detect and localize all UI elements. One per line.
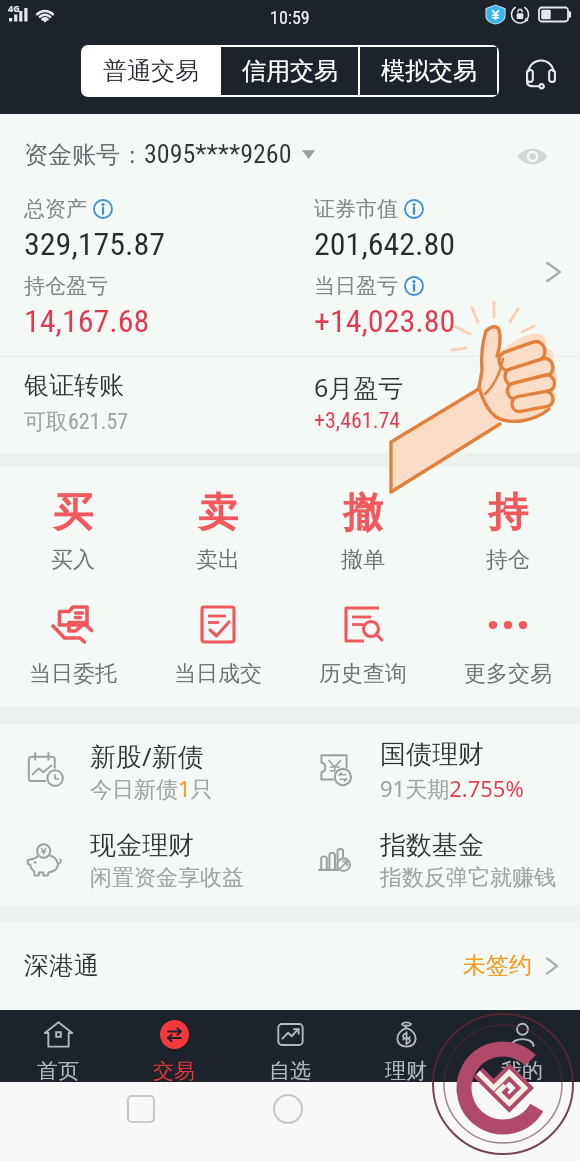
button[interactable]: 理财 [348, 1010, 464, 1082]
staticText: 撤 [343, 487, 383, 537]
button[interactable]: 国债理财 [290, 724, 580, 815]
button[interactable]: 卖 [145, 487, 290, 574]
staticText: +3,461.74 [314, 408, 401, 434]
staticText: 更多交易 [464, 660, 552, 688]
staticText: 银证转账 [24, 370, 124, 401]
staticText: 10:59 [270, 7, 310, 28]
staticText: 深港通 [24, 950, 99, 981]
staticText: 买 [53, 487, 93, 537]
staticText: 当日盈亏 [314, 273, 398, 299]
staticText: 指数基金 [380, 829, 484, 862]
button[interactable]: 买 [0, 487, 145, 574]
staticText: 卖出 [196, 546, 240, 574]
staticText: 持仓 [486, 546, 530, 574]
staticText: 撤单 [341, 546, 385, 574]
staticText: 新股/新债 [90, 738, 204, 774]
button[interactable]: 更多交易 [435, 600, 580, 688]
staticText: 我的 [501, 1058, 543, 1082]
staticText: 首页 [37, 1058, 79, 1082]
button[interactable]: 深港通 [0, 922, 580, 1009]
staticText: 总资产 [24, 196, 87, 222]
staticText: 资金账号： [24, 140, 144, 170]
staticText: 历史查询 [319, 660, 407, 688]
button[interactable]: 历史查询 [290, 600, 435, 688]
button[interactable]: 交易 [116, 1010, 232, 1082]
button[interactable]: 信用交易 [221, 47, 358, 95]
staticText: 当日成交 [174, 660, 262, 688]
staticText: 模拟交易 [381, 56, 477, 86]
button[interactable]: 当日委托 [0, 600, 145, 688]
staticText: 可取621.57 [24, 408, 129, 436]
staticText: 持仓盈亏 [24, 273, 108, 299]
staticText: 329,175.87 [24, 225, 166, 263]
button[interactable]: 新股/新债 [0, 724, 290, 815]
staticText: 未签约 [463, 951, 532, 980]
button[interactable]: 持 [435, 487, 580, 574]
staticText: 证券市值 [314, 196, 398, 222]
staticText: 理财 [385, 1058, 427, 1082]
staticText: 当日委托 [29, 660, 117, 688]
button[interactable] [0, 190, 580, 356]
staticText: 持 [488, 487, 528, 537]
button[interactable]: 银证转账 [0, 357, 290, 453]
staticText: 6月盈亏 [314, 370, 404, 404]
staticText: 交易 [153, 1058, 195, 1082]
staticText: 14,167.68 [24, 302, 150, 340]
staticText: 买入 [51, 546, 95, 574]
staticText: 信用交易 [242, 56, 338, 86]
staticText: 国债理财 [380, 738, 484, 771]
staticText: 4G [8, 2, 20, 14]
button[interactable]: 客服 [518, 49, 564, 95]
button[interactable]: 模拟交易 [360, 47, 497, 95]
staticText: 现金理财 [90, 829, 194, 862]
staticText: 自选 [269, 1058, 311, 1082]
button[interactable]: 6月盈亏 [290, 357, 580, 453]
button[interactable]: 当日成交 [145, 600, 290, 688]
staticText: 3095****9260 [144, 139, 292, 169]
staticText: 闲置资金享收益 [90, 864, 244, 892]
staticText: +14,023.80 [314, 302, 456, 340]
staticText: 91天期2.755% [380, 773, 524, 803]
button[interactable]: 显示/隐藏资产 [508, 132, 556, 180]
button[interactable]: 我的 [464, 1010, 580, 1082]
staticText: 201,642.80 [314, 225, 456, 263]
staticText: 今日新债1只 [90, 773, 213, 803]
staticText: 卖 [198, 487, 238, 537]
staticText: 指数反弹它就赚钱 [380, 864, 556, 892]
button[interactable]: 自选 [232, 1010, 348, 1082]
button[interactable]: 现金理财 [0, 815, 290, 906]
button[interactable]: 指数基金 [290, 815, 580, 906]
button[interactable]: 撤 [290, 487, 435, 574]
button[interactable]: 首页 [0, 1010, 116, 1082]
staticText: 普通交易 [103, 56, 199, 86]
button[interactable]: 普通交易 [83, 47, 219, 95]
